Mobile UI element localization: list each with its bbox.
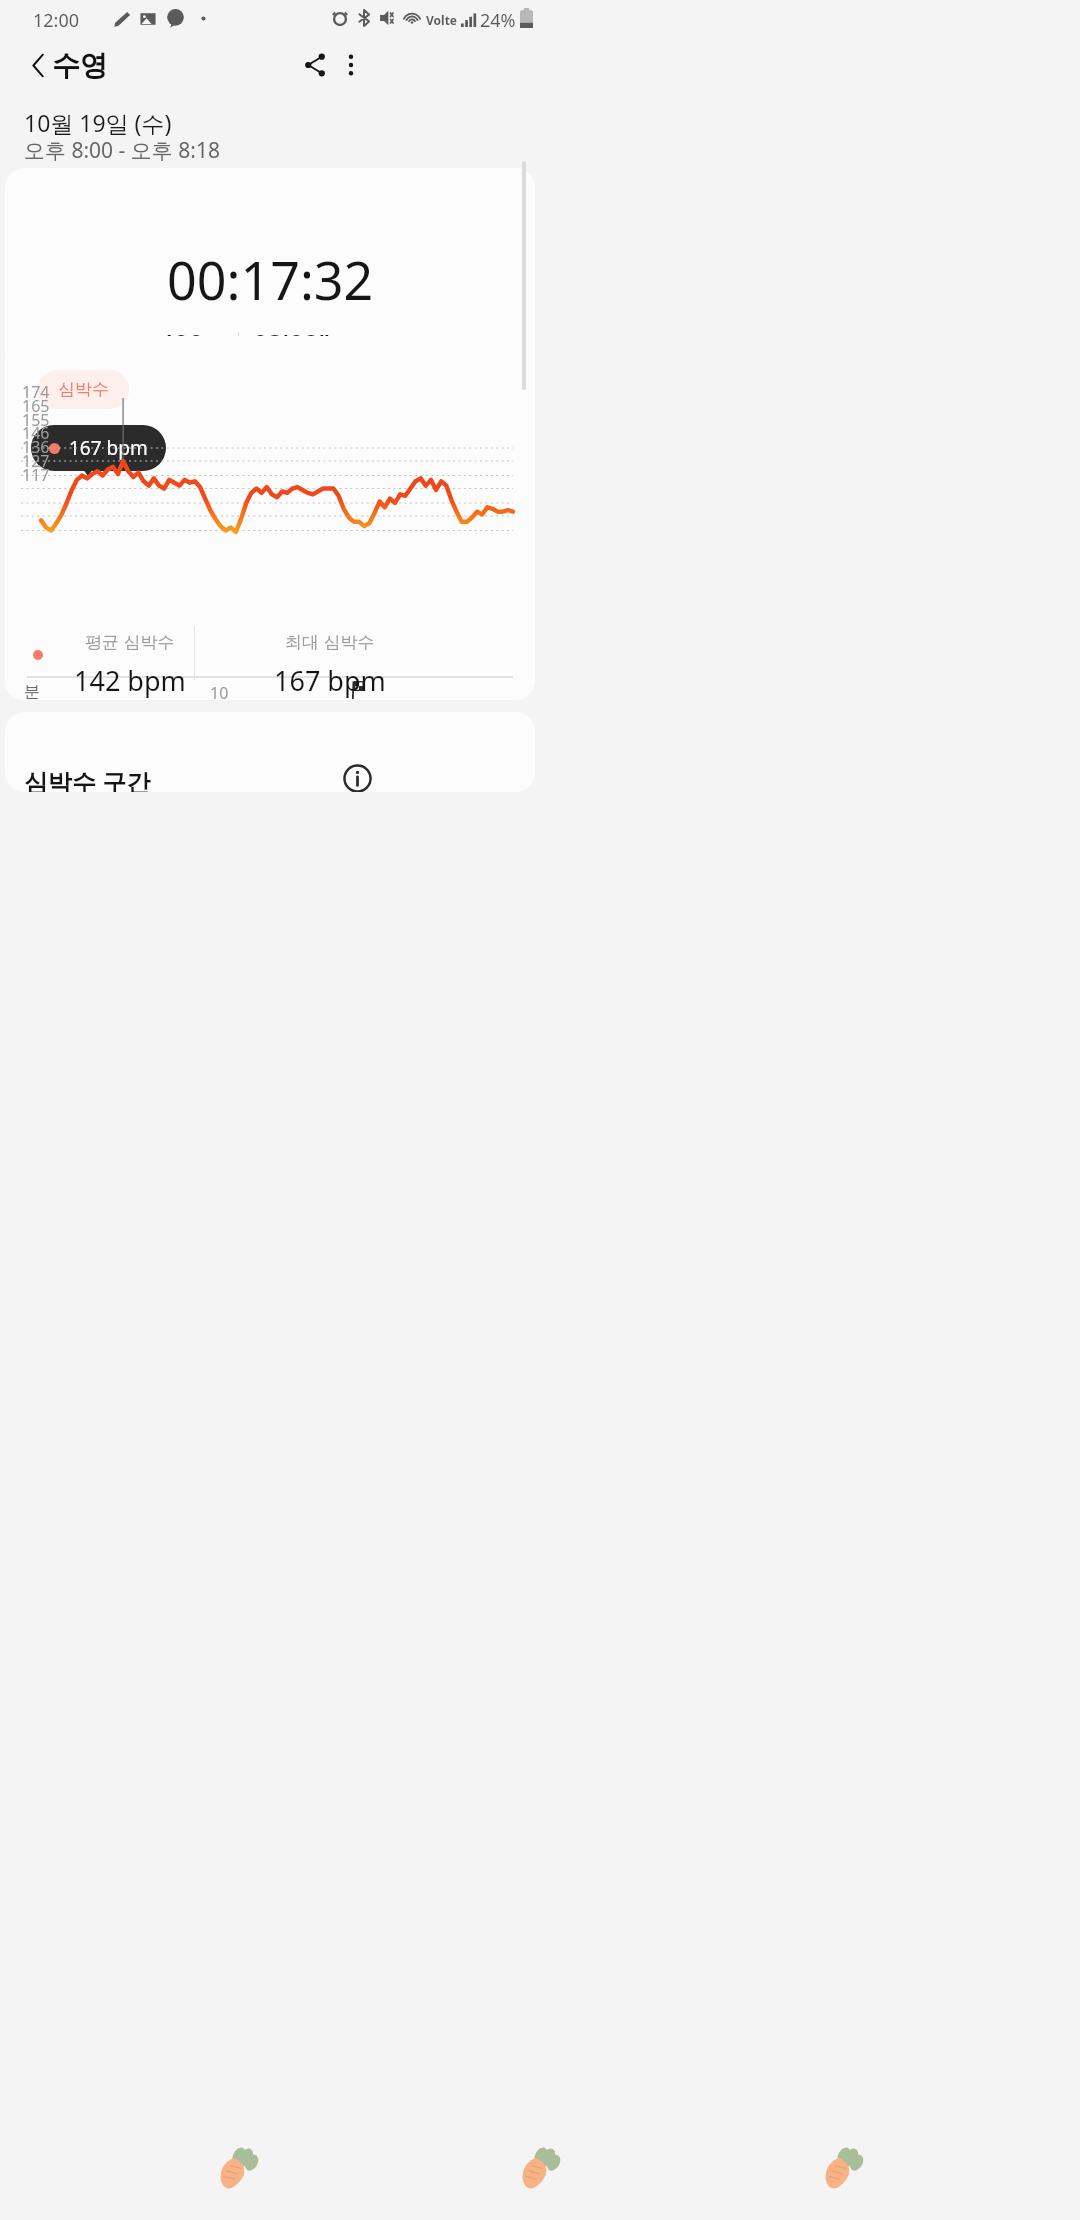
staticText: 24%: [480, 8, 516, 33]
staticText: 167 bpm: [69, 435, 148, 461]
staticText: 심박수: [58, 379, 109, 400]
button[interactable]: Tab 1: [173, 2128, 303, 2220]
staticText: 400: [159, 325, 204, 360]
staticText: 10월 19일 (수): [24, 107, 172, 138]
staticText: 174: [22, 381, 50, 403]
button[interactable]: 심박수 구간: [5, 712, 535, 792]
staticText: 10: [210, 682, 229, 700]
staticText: 127: [22, 450, 50, 472]
button[interactable]: 심박수: [38, 370, 129, 409]
button[interactable]: Back: [9, 36, 67, 94]
staticText: 117: [22, 464, 50, 486]
staticText: 12:00: [33, 8, 80, 33]
staticText: 평균 심박수: [85, 630, 175, 653]
staticText: 155: [22, 409, 50, 431]
button[interactable]: 00:17:32: [5, 168, 535, 435]
button[interactable]: Information: [333, 754, 381, 792]
staticText: 수영: [52, 48, 108, 83]
button[interactable]: Tab 3: [778, 2128, 908, 2220]
button[interactable]: More options: [322, 36, 380, 94]
staticText: 136: [22, 436, 50, 458]
staticText: 165: [22, 395, 50, 417]
staticText: 167 bpm: [274, 662, 386, 699]
staticText: Volte: [426, 12, 458, 28]
staticText: 146: [22, 422, 50, 444]
staticText: 03'02": [253, 325, 330, 360]
button[interactable]: 심박수: [5, 336, 535, 700]
staticText: 최대 심박수: [285, 630, 375, 653]
staticText: 00:17:32: [167, 244, 374, 315]
button[interactable]: Share: [286, 36, 344, 94]
staticText: 심박수 구간: [24, 765, 151, 792]
staticText: 오후 8:00 - 오후 8:18: [24, 136, 220, 165]
staticText: 142 bpm: [74, 662, 186, 699]
staticText: 분: [24, 682, 40, 700]
button[interactable]: Tab 2: [475, 2128, 605, 2220]
